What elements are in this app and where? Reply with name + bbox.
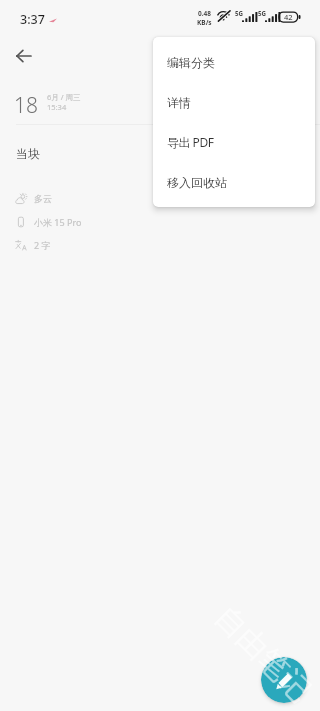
staticText: 导出 PDF: [167, 134, 214, 150]
staticText: 42: [284, 12, 293, 22]
staticText: KB/s: [197, 18, 212, 27]
staticText: 详情: [167, 95, 191, 110]
button[interactable]: Edit note: [261, 657, 307, 703]
button[interactable]: 编辑分类: [153, 42, 315, 82]
staticText: 3:37: [20, 11, 45, 28]
staticText: 小米 15 Pro: [34, 216, 82, 228]
staticText: 5G: [258, 9, 267, 17]
staticText: 移入回收站: [167, 175, 227, 190]
staticText: 当块: [16, 146, 40, 161]
staticText: 18: [14, 91, 38, 120]
button[interactable]: 详情: [153, 82, 315, 122]
button[interactable]: Back: [3, 36, 43, 76]
staticText: 编辑分类: [167, 55, 215, 70]
button[interactable]: 导出 PDF: [153, 122, 315, 162]
staticText: 6月 / 周三: [47, 92, 81, 102]
staticText: 多云: [34, 193, 52, 204]
staticText: 15:34: [47, 102, 67, 112]
staticText: 5G: [235, 9, 244, 17]
staticText: 0.48: [198, 9, 211, 18]
button[interactable]: 移入回收站: [153, 162, 315, 202]
staticText: 2 字: [34, 239, 51, 251]
staticText: 自由笔记: [207, 598, 319, 710]
